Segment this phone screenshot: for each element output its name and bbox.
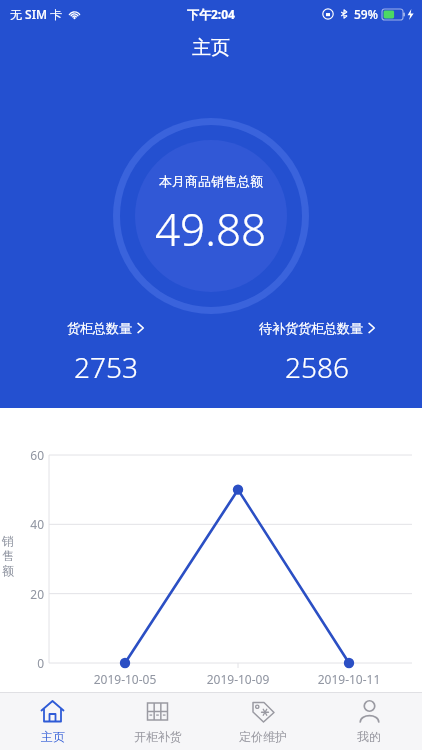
staticText: 0 [14,655,44,671]
button[interactable]: 我的 [316,693,422,750]
staticText: 售 [2,548,14,563]
staticText: 销 [2,533,14,548]
staticText: 开柜补货 [134,729,182,744]
staticText: 2019-10-05 [83,671,167,687]
staticText: 额 [2,563,14,578]
staticText: 主页 [41,729,65,744]
button[interactable]: 定价维护 [210,693,316,750]
button[interactable]: 待补货货柜总数量 [211,316,422,390]
staticText: 待补货货柜总数量 [259,320,363,336]
staticText: 主页 [192,36,230,60]
staticText: 40 [14,516,44,532]
staticText: 2019-10-11 [307,671,391,687]
staticText: 59% [354,6,378,22]
staticText: 2586 [285,348,349,386]
staticText: 货柜总数量 [67,320,132,336]
staticText: 下午2:04 [187,6,235,22]
staticText: 我的 [357,729,381,744]
button[interactable]: 货柜总数量 [0,316,211,390]
staticText: 2019-10-09 [196,671,280,687]
button[interactable]: 主页 [0,693,105,750]
staticText: 20 [14,586,44,602]
staticText: 定价维护 [239,729,287,744]
staticText: 2753 [74,348,138,386]
staticText: 无 SIM 卡 [10,6,63,22]
staticText: 49.88 [155,199,267,259]
staticText: 60 [14,447,44,463]
button[interactable]: 开柜补货 [105,693,210,750]
staticText: 本月商品销售总额 [159,173,263,189]
